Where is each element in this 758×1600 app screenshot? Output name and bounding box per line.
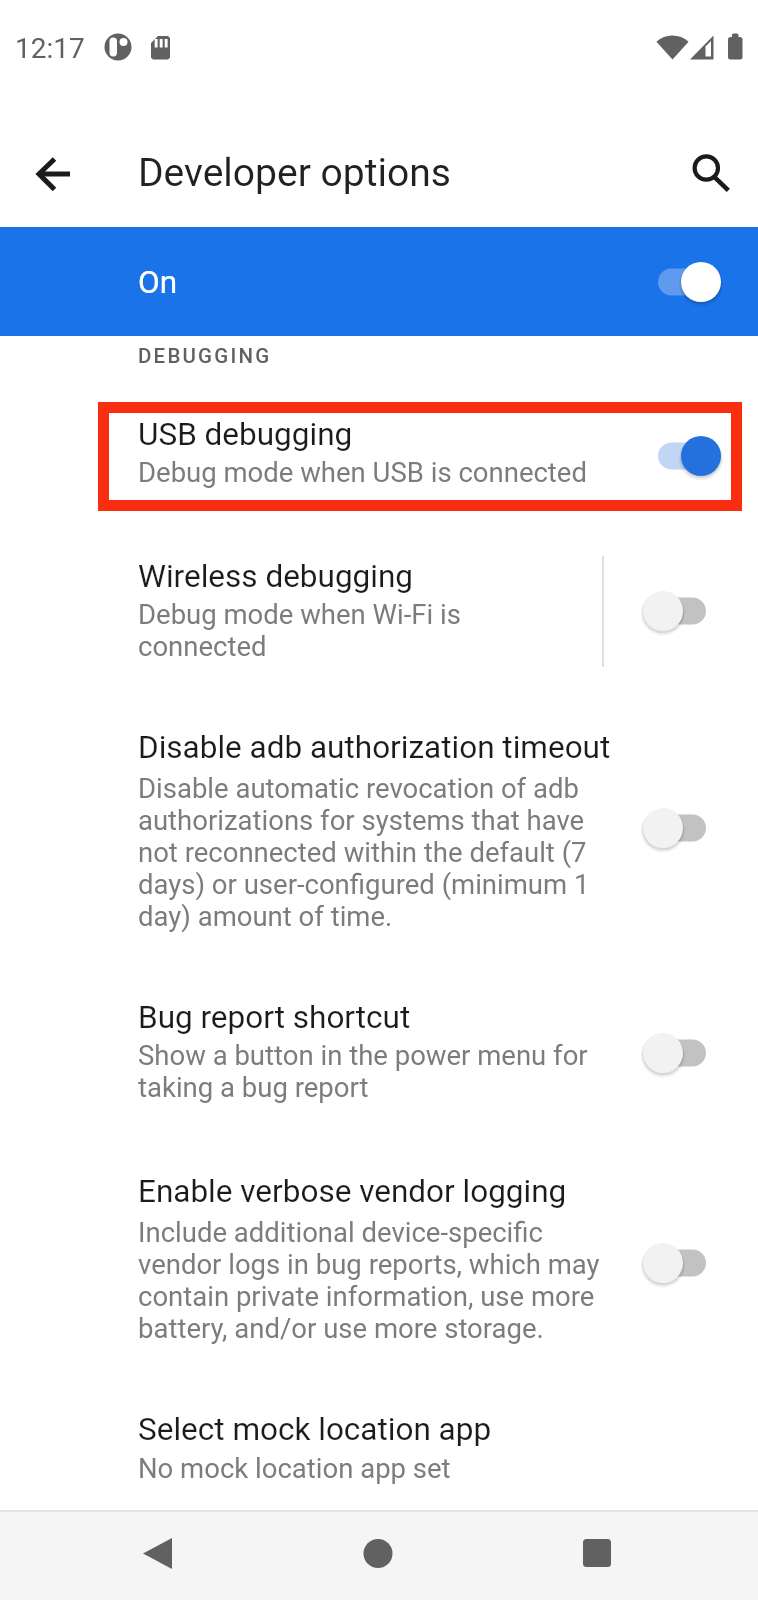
staticText: Debug mode when USB is connected (138, 456, 587, 488)
staticText: On (138, 264, 178, 301)
button[interactable]: Bug report shortcut (0, 990, 758, 1110)
staticText: DEBUGGING (138, 344, 272, 368)
button[interactable] (30, 150, 80, 200)
staticText: Include additional device-specific vendo… (138, 1216, 600, 1344)
button[interactable]: USB debugging (0, 402, 758, 511)
button[interactable] (572, 1528, 622, 1578)
button[interactable] (643, 434, 721, 478)
staticText: Show a button in the power menu for taki… (138, 1039, 588, 1103)
button[interactable] (688, 148, 736, 196)
button[interactable] (643, 260, 721, 304)
button[interactable]: On (0, 227, 758, 336)
staticText: Wireless debugging (138, 558, 414, 595)
button[interactable] (133, 1528, 183, 1578)
button[interactable]: Disable adb authorization timeout (0, 720, 758, 940)
staticText: Debug mode when Wi-Fi is connected (138, 598, 461, 662)
button[interactable] (353, 1528, 403, 1578)
staticText: No mock location app set (138, 1452, 451, 1484)
button[interactable]: Enable verbose vendor logging (0, 1164, 758, 1349)
staticText: USB debugging (138, 416, 353, 453)
staticText: Disable adb authorization timeout (138, 729, 611, 766)
staticText: Select mock location app (138, 1411, 492, 1448)
staticText: Enable verbose vendor logging (138, 1173, 567, 1210)
button[interactable] (643, 806, 721, 850)
button[interactable]: Select mock location app (0, 1402, 758, 1502)
staticText: Bug report shortcut (138, 999, 411, 1036)
button[interactable]: Wireless debugging (0, 550, 758, 672)
staticText: 12:17 (15, 32, 85, 65)
staticText: Disable automatic revocation of adb auth… (138, 772, 590, 932)
button[interactable] (643, 1031, 721, 1075)
button[interactable] (643, 589, 721, 633)
button[interactable] (643, 1241, 721, 1285)
staticText: Developer options (138, 150, 451, 196)
